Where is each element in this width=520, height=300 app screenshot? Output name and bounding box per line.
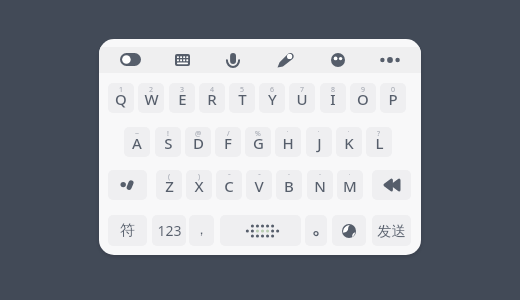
staticText: P [388,89,398,109]
button[interactable]: Switch input [108,170,147,200]
button[interactable]: Emoji [325,47,351,73]
button[interactable]: C [216,170,242,200]
staticText: A [132,133,142,153]
staticText: 1 [119,85,124,95]
staticText: 5 [240,85,245,95]
staticText: Q [115,89,127,109]
staticText: ? [377,129,381,139]
staticText: 8 [331,85,336,95]
button[interactable]: Q [108,83,134,113]
staticText: H [282,133,294,153]
staticText: R [207,89,217,109]
staticText: S [164,133,173,153]
staticText: C [224,176,234,196]
staticText: ! [167,129,169,139]
button[interactable]: H [275,127,301,157]
button[interactable]: B [276,170,302,200]
staticText: V [254,176,264,196]
button[interactable]: K [336,127,362,157]
button[interactable]: V [246,170,272,200]
button[interactable]: M [337,170,363,200]
staticText: M [343,176,357,196]
button[interactable]: U [289,83,315,113]
staticText: 9 [361,85,366,95]
staticText: ˊ [288,172,290,182]
staticText: ) [198,172,201,182]
button[interactable]: S [155,127,181,157]
button[interactable]: Y [259,83,285,113]
button[interactable]: J [306,127,332,157]
staticText: G [253,133,264,153]
staticText: Z [165,176,174,196]
staticText: J [317,133,322,153]
staticText: Y [268,89,277,109]
staticText: ˋ [319,172,321,182]
staticText: L [375,133,384,153]
staticText: X [194,176,204,196]
staticText: 6 [270,85,275,95]
staticText: 发送 [377,222,406,240]
button[interactable]: R [199,83,225,113]
button[interactable]: Space [220,215,301,246]
staticText: D [193,133,204,153]
button[interactable]: Voice input [220,47,246,73]
button[interactable]: A [124,127,150,157]
button[interactable]: Backspace [372,170,411,200]
button[interactable]: Switch language [332,215,366,246]
button[interactable]: G [245,127,271,157]
button[interactable]: Keyboard layout [169,47,195,73]
button[interactable]: T [229,83,255,113]
staticText: ˙ [318,129,320,139]
staticText: 3 [180,85,185,95]
staticText: N [314,176,326,196]
button[interactable]: More options [377,47,403,73]
button[interactable]: Toggle Chinese English [120,53,141,66]
staticText: ~ [135,129,140,139]
button[interactable]: O [350,83,376,113]
button[interactable]: P [380,83,406,113]
staticText: ( [168,172,171,182]
staticText: ˙ [348,129,350,139]
staticText: U [296,89,308,109]
button[interactable]: Handwriting [272,47,298,73]
staticText: % [255,129,261,139]
staticText: O [357,89,369,109]
button[interactable]: 123 [152,215,186,246]
staticText: / [227,129,230,139]
button[interactable]: L [366,127,392,157]
button[interactable]: D [185,127,211,157]
staticText: E [178,89,187,109]
staticText: 4 [210,85,215,95]
button[interactable]: Period [305,215,327,246]
staticText: ˇ [258,172,261,182]
staticText: 123 [157,221,182,240]
button[interactable]: X [186,170,212,200]
staticText: 符 [120,221,135,240]
staticText: F [224,133,232,153]
staticText: ， [195,221,208,237]
staticText: ˙ [287,129,289,139]
staticText: ˙ [349,172,351,182]
staticText: 7 [300,85,305,95]
staticText: @ [195,129,202,139]
button[interactable]: W [138,83,164,113]
button[interactable]: I [320,83,346,113]
button[interactable]: F [215,127,241,157]
staticText: W [144,89,159,109]
staticText: T [238,89,247,109]
staticText: I [330,89,336,109]
staticText: ˉ [228,172,231,182]
button[interactable]: N [307,170,333,200]
staticText: 2 [149,85,154,95]
button[interactable]: Z [156,170,182,200]
staticText: B [284,176,294,196]
button[interactable]: ， [189,215,214,246]
staticText: 0 [391,85,396,95]
button[interactable]: 发送 [372,215,411,246]
button[interactable]: 符 [108,215,147,246]
staticText: K [344,133,354,153]
button[interactable]: E [169,83,195,113]
